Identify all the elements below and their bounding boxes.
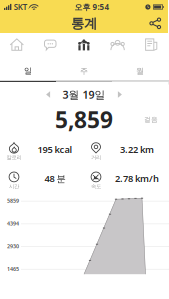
button[interactable]: 채팅	[34, 33, 67, 56]
button[interactable]: 통계	[67, 33, 101, 56]
staticText: 일	[24, 66, 32, 76]
button[interactable]: 이전 날	[39, 82, 57, 107]
staticText: 2.78 km/h	[115, 172, 159, 185]
staticText: 3월 19일	[62, 87, 105, 102]
button[interactable]: 일	[0, 56, 56, 82]
staticText: 오후 9:54	[75, 2, 110, 12]
staticText: 5,859	[55, 104, 113, 134]
staticText: 2930	[7, 243, 19, 250]
button[interactable]: 친구	[101, 33, 134, 56]
staticText: 칼로리	[6, 154, 21, 161]
staticText: 4394	[7, 220, 19, 227]
staticText: 195 kcal	[37, 143, 72, 156]
staticText: 통계	[71, 15, 97, 32]
staticText: 거리	[91, 154, 101, 161]
staticText: 5859	[7, 197, 19, 204]
staticText: 속도	[91, 183, 101, 190]
staticText: 3.22 km	[120, 143, 154, 156]
button[interactable]: 다음 날	[110, 82, 129, 107]
staticText: 시간	[9, 183, 19, 190]
button[interactable]: 홈	[0, 33, 34, 56]
staticText: 걸음	[144, 115, 158, 124]
button[interactable]: 더보기	[134, 33, 168, 56]
staticText: 주	[80, 66, 88, 76]
button[interactable]: 공유	[143, 14, 168, 33]
button[interactable]: 주	[56, 56, 112, 82]
staticText: 월	[136, 66, 144, 76]
staticText: SKT	[14, 2, 28, 12]
staticText: 48 분	[44, 172, 65, 185]
button[interactable]: 월	[112, 56, 168, 82]
staticText: 1465	[7, 265, 19, 272]
